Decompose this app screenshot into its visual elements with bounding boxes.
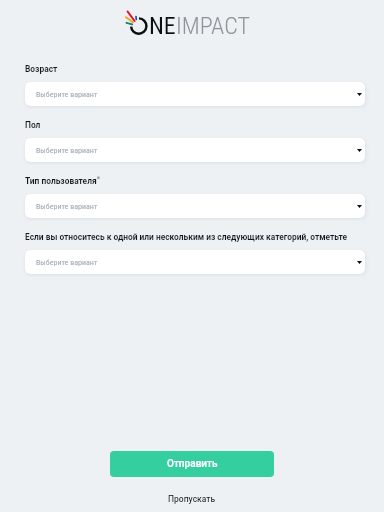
staticText: Пропускать [168,494,216,504]
button[interactable]: Выберите вариант [25,82,365,106]
button[interactable]: Пропускать [158,492,226,506]
staticText: NE [149,12,176,40]
staticText: Возраст [25,64,58,74]
staticText: Выберите вариант [36,90,98,99]
staticText: IMPACT [176,12,250,40]
button[interactable]: Выберите вариант [25,138,365,162]
staticText: Если вы относитесь к одной или нескольки… [25,232,347,242]
button[interactable]: Выберите вариант [25,194,365,218]
button[interactable]: Выберите вариант [25,250,365,274]
button[interactable]: Отправить [110,451,274,477]
staticText: Пол [25,120,41,130]
staticText: Отправить [167,458,218,470]
staticText: Тип пользователя [25,176,97,186]
staticText: Выберите вариант [36,258,98,267]
staticText: Выберите вариант [36,202,98,211]
staticText: Выберите вариант [36,146,98,155]
